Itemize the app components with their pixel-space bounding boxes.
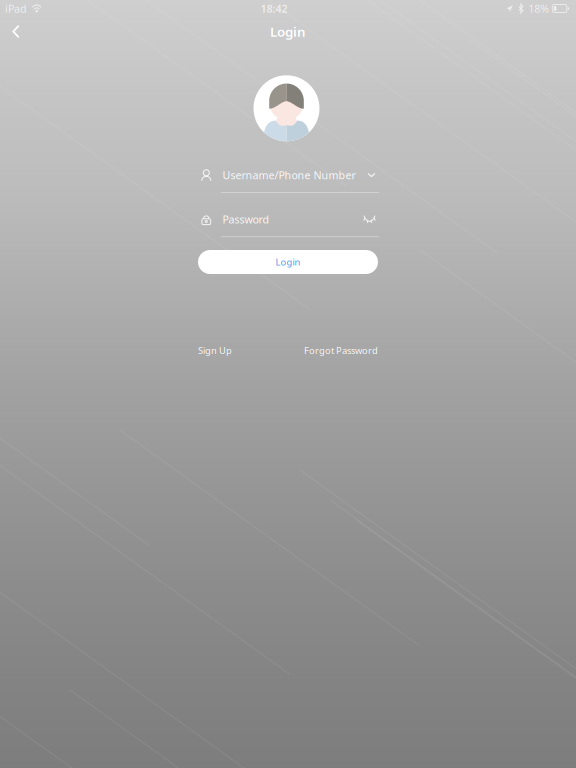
staticText: Forgot Password [304,344,378,357]
button[interactable]: Login [198,250,378,274]
staticText: Login [270,23,306,40]
staticText: Login [275,256,300,268]
staticText: Sign Up [198,344,232,357]
button[interactable]: Forgot Password [304,344,378,357]
button[interactable]: Password [198,208,378,237]
staticText: 18:42 [260,1,287,16]
button[interactable]: Back [0,16,32,46]
button[interactable]: Sign Up [198,344,232,357]
staticText: 18% [528,1,549,16]
staticText: Username/Phone Number [222,168,355,182]
staticText: iPad [5,1,27,16]
staticText: Password [222,212,269,226]
button[interactable]: Username/Phone Number [198,163,378,193]
